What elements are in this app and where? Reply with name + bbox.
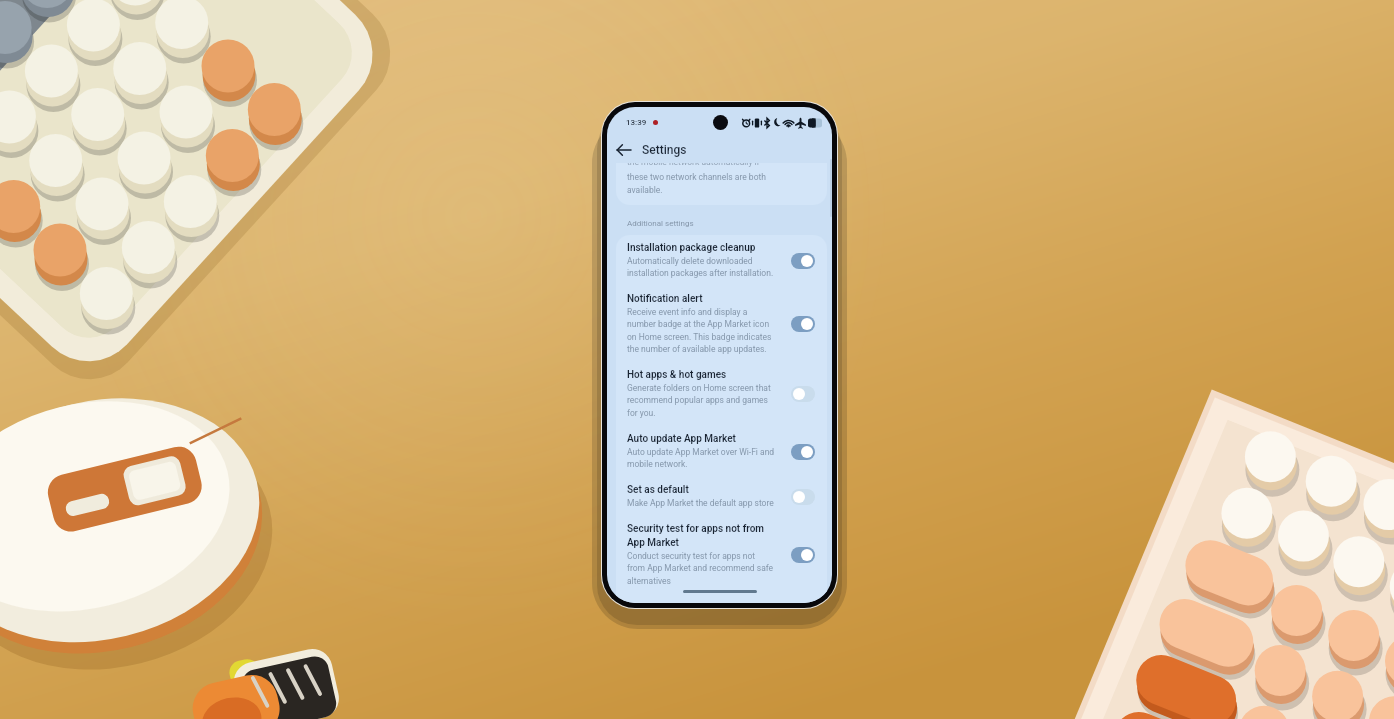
button[interactable]: Installation package cleanup	[616, 235, 827, 286]
staticText: Installation package cleanup	[627, 242, 756, 254]
staticText: from App Market and recommend safe	[627, 563, 774, 573]
staticText: Auto update App Market over Wi-Fi and	[627, 447, 775, 457]
staticText: the mobile network automatically if	[627, 163, 760, 167]
staticText: the number of available app updates.	[627, 344, 767, 354]
staticText: number badge at the App Market icon	[627, 319, 770, 329]
staticText: installation packages after installation…	[627, 268, 774, 278]
staticText: 13:39	[626, 118, 647, 127]
button[interactable]: Switch on	[791, 253, 815, 269]
button[interactable]: Switch on	[791, 316, 815, 332]
staticText: Security test for apps not from	[627, 523, 765, 535]
staticText: App Market	[627, 537, 679, 549]
button[interactable]: Set as default	[616, 477, 827, 516]
staticText: Notification alert	[627, 293, 703, 305]
button[interactable]: Switch on	[791, 547, 815, 563]
staticText: on Home screen. This badge indicates	[627, 332, 772, 342]
staticText: Make App Market the default app store	[627, 498, 774, 508]
staticText: Receive event info and display a	[627, 307, 748, 317]
staticText: Additional settings	[627, 219, 694, 228]
staticText: Hot apps & hot games	[627, 369, 727, 381]
staticText: Automatically delete downloaded	[627, 256, 753, 266]
staticText: Conduct security test for apps not	[627, 551, 756, 561]
staticText: these two network channels are both	[627, 172, 766, 182]
button[interactable]: Switch off	[791, 489, 815, 505]
staticText: alternatives	[627, 576, 671, 586]
button[interactable]: Notification alert	[616, 286, 827, 362]
staticText: for you.	[627, 408, 656, 418]
button[interactable]: Hot apps & hot games	[616, 362, 827, 426]
staticText: recommend popular apps and games	[627, 395, 769, 405]
staticText: Set as default	[627, 484, 689, 496]
button[interactable]: Switch on	[791, 444, 815, 460]
staticText: mobile network.	[627, 459, 688, 469]
button[interactable]: Auto update App Market	[616, 426, 827, 477]
button[interactable]: Back	[612, 138, 636, 162]
staticText: available.	[627, 185, 663, 195]
staticText: Settings	[642, 143, 687, 157]
staticText: Generate folders on Home screen that	[627, 383, 771, 393]
button[interactable]: Security test for apps not from	[616, 516, 827, 594]
staticText: Auto update App Market	[627, 433, 736, 445]
button[interactable]: Switch off	[791, 386, 815, 402]
